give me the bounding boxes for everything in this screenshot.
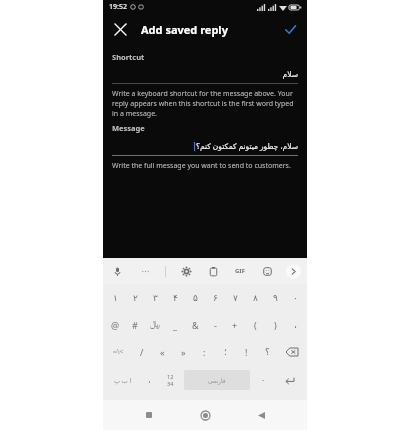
button[interactable]: Recents xyxy=(134,400,164,430)
button[interactable]: Expand toolbar xyxy=(286,264,301,279)
button[interactable]: ٠ xyxy=(253,367,274,393)
button[interactable]: Shortcut xyxy=(103,52,307,119)
button[interactable]: ، xyxy=(139,367,160,393)
staticText: سلام، چطور میتونم کمکتون کنم؟ xyxy=(196,141,298,151)
button[interactable]: _ xyxy=(165,311,185,338)
button[interactable]: ۸ xyxy=(245,284,265,311)
staticText: سلام xyxy=(282,70,298,79)
staticText: ۳ xyxy=(153,293,158,303)
staticText: ؟ xyxy=(265,347,270,357)
staticText: Add saved reply xyxy=(141,22,228,37)
staticText: : xyxy=(203,346,206,358)
staticText: @ xyxy=(111,319,120,331)
staticText: 12 xyxy=(167,373,174,380)
button[interactable]: « xyxy=(152,338,173,365)
staticText: « xyxy=(160,346,165,358)
staticText: Write the full message you want to send … xyxy=(112,161,291,171)
button[interactable]: =\< xyxy=(105,338,131,365)
staticText: Message xyxy=(112,123,145,133)
button[interactable]: + xyxy=(225,311,245,338)
staticText: ! xyxy=(245,346,248,358)
button[interactable]: Clipboard xyxy=(205,263,221,279)
button[interactable]: Message xyxy=(103,123,307,171)
staticText: ٠ xyxy=(261,376,266,385)
staticText: ۵ xyxy=(193,293,198,303)
staticText: 34 xyxy=(167,380,174,387)
staticText: 19:52 xyxy=(109,2,127,12)
button[interactable]: ) xyxy=(265,311,285,338)
button[interactable]: Backspace xyxy=(278,338,305,365)
staticText: GIF xyxy=(235,267,245,275)
button[interactable]: Settings xyxy=(178,263,194,279)
staticText: =\< xyxy=(113,347,124,357)
staticText: ۹ xyxy=(273,293,278,303)
button[interactable]: ۹ xyxy=(265,284,285,311)
staticText: » xyxy=(181,346,186,358)
button[interactable]: ۰ xyxy=(285,284,305,311)
button[interactable]: Close xyxy=(109,18,131,40)
button[interactable]: ﷼ xyxy=(145,311,165,338)
button[interactable]: GIF xyxy=(232,264,248,278)
staticText: ۱ xyxy=(113,293,118,303)
button[interactable]: فارسی xyxy=(184,370,250,390)
staticText: ۷ xyxy=(233,293,238,303)
button[interactable]: ا ب پ xyxy=(106,367,139,393)
button[interactable]: / xyxy=(131,338,152,365)
button[interactable]: # xyxy=(125,311,145,338)
button[interactable]: Home xyxy=(190,400,220,430)
staticText: _ xyxy=(173,319,177,331)
staticText: ، xyxy=(148,376,151,385)
staticText: / xyxy=(140,346,144,358)
button[interactable]: ۵ xyxy=(185,284,205,311)
button[interactable]: ۳ xyxy=(145,284,165,311)
staticText: فارسی xyxy=(208,377,226,384)
button[interactable]: Enter xyxy=(274,367,304,393)
button[interactable]: ۷ xyxy=(225,284,245,311)
button[interactable]: ، xyxy=(285,311,305,338)
button[interactable]: & xyxy=(185,311,205,338)
staticText: ﷼ xyxy=(150,320,160,329)
button[interactable]: ؛ xyxy=(215,338,236,365)
button[interactable]: Stickers xyxy=(259,263,275,279)
button[interactable]: - xyxy=(205,311,225,338)
button[interactable]: ۲ xyxy=(125,284,145,311)
button[interactable]: ۴ xyxy=(165,284,185,311)
staticText: ؛ xyxy=(224,347,227,357)
staticText: Write a keyboard shortcut for the messag… xyxy=(112,89,298,119)
staticText: + xyxy=(232,319,238,331)
staticText: ۶ xyxy=(213,293,218,303)
staticText: ، xyxy=(294,320,297,330)
button[interactable]: ! xyxy=(236,338,257,365)
staticText: ( xyxy=(254,319,257,331)
staticText: Shortcut xyxy=(112,52,145,62)
button[interactable]: ؟ xyxy=(257,338,278,365)
staticText: ۴ xyxy=(173,293,178,303)
button[interactable]: ۶ xyxy=(205,284,225,311)
button[interactable]: Voice input xyxy=(109,263,125,279)
staticText: & xyxy=(192,319,199,331)
staticText: ۰ xyxy=(293,293,298,303)
staticText: # xyxy=(132,319,138,331)
staticText: ا ب پ xyxy=(114,376,132,385)
staticText: ) xyxy=(274,319,277,331)
button[interactable]: ( xyxy=(245,311,265,338)
button[interactable]: » xyxy=(173,338,194,365)
button[interactable]: Back xyxy=(246,400,276,430)
button[interactable]: More options xyxy=(137,263,153,279)
staticText: - xyxy=(214,319,217,331)
button[interactable]: : xyxy=(194,338,215,365)
button[interactable]: @ xyxy=(105,311,125,338)
staticText: ۸ xyxy=(253,293,258,303)
button[interactable]: ۱ xyxy=(105,284,125,311)
staticText: ۲ xyxy=(133,293,138,303)
button[interactable]: 12 xyxy=(160,367,181,393)
button[interactable]: Save xyxy=(279,18,301,40)
